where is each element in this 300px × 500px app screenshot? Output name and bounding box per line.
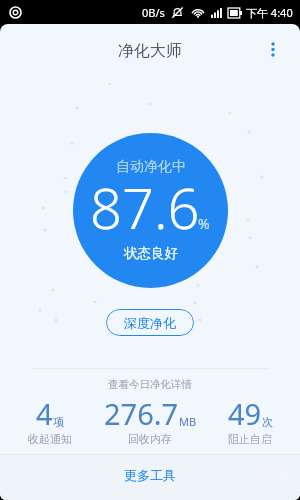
- staticText: 更多工具: [124, 467, 176, 483]
- staticText: 0B/s: [142, 5, 165, 20]
- button[interactable]: 查看今日净化详情: [98, 376, 202, 393]
- staticText: 自动净化中: [116, 158, 186, 176]
- button[interactable]: 4: [0, 394, 100, 447]
- staticText: 次: [262, 415, 273, 429]
- staticText: 状态良好: [124, 245, 178, 262]
- staticText: %: [198, 214, 210, 233]
- staticText: 87.6: [90, 169, 200, 245]
- staticText: 4: [36, 394, 53, 433]
- button[interactable]: 更多工具: [0, 455, 300, 500]
- button[interactable]: 49: [200, 394, 300, 447]
- staticText: 276.7: [104, 394, 179, 433]
- staticText: 阻止自启: [228, 432, 272, 446]
- button[interactable]: More options: [253, 30, 293, 70]
- staticText: 49: [228, 394, 262, 433]
- button[interactable]: 276.7: [100, 394, 200, 447]
- staticText: MB: [179, 414, 197, 429]
- staticText: 收起通知: [28, 432, 72, 446]
- staticText: 回收内存: [128, 432, 172, 446]
- button[interactable]: 深度净化: [106, 309, 194, 336]
- button[interactable]: 自动净化中: [73, 133, 228, 288]
- staticText: 净化大师: [118, 41, 182, 61]
- staticText: 下午 4:40: [246, 5, 293, 20]
- staticText: 项: [53, 415, 64, 429]
- staticText: 深度净化: [124, 315, 176, 331]
- staticText: 查看今日净化详情: [108, 378, 192, 391]
